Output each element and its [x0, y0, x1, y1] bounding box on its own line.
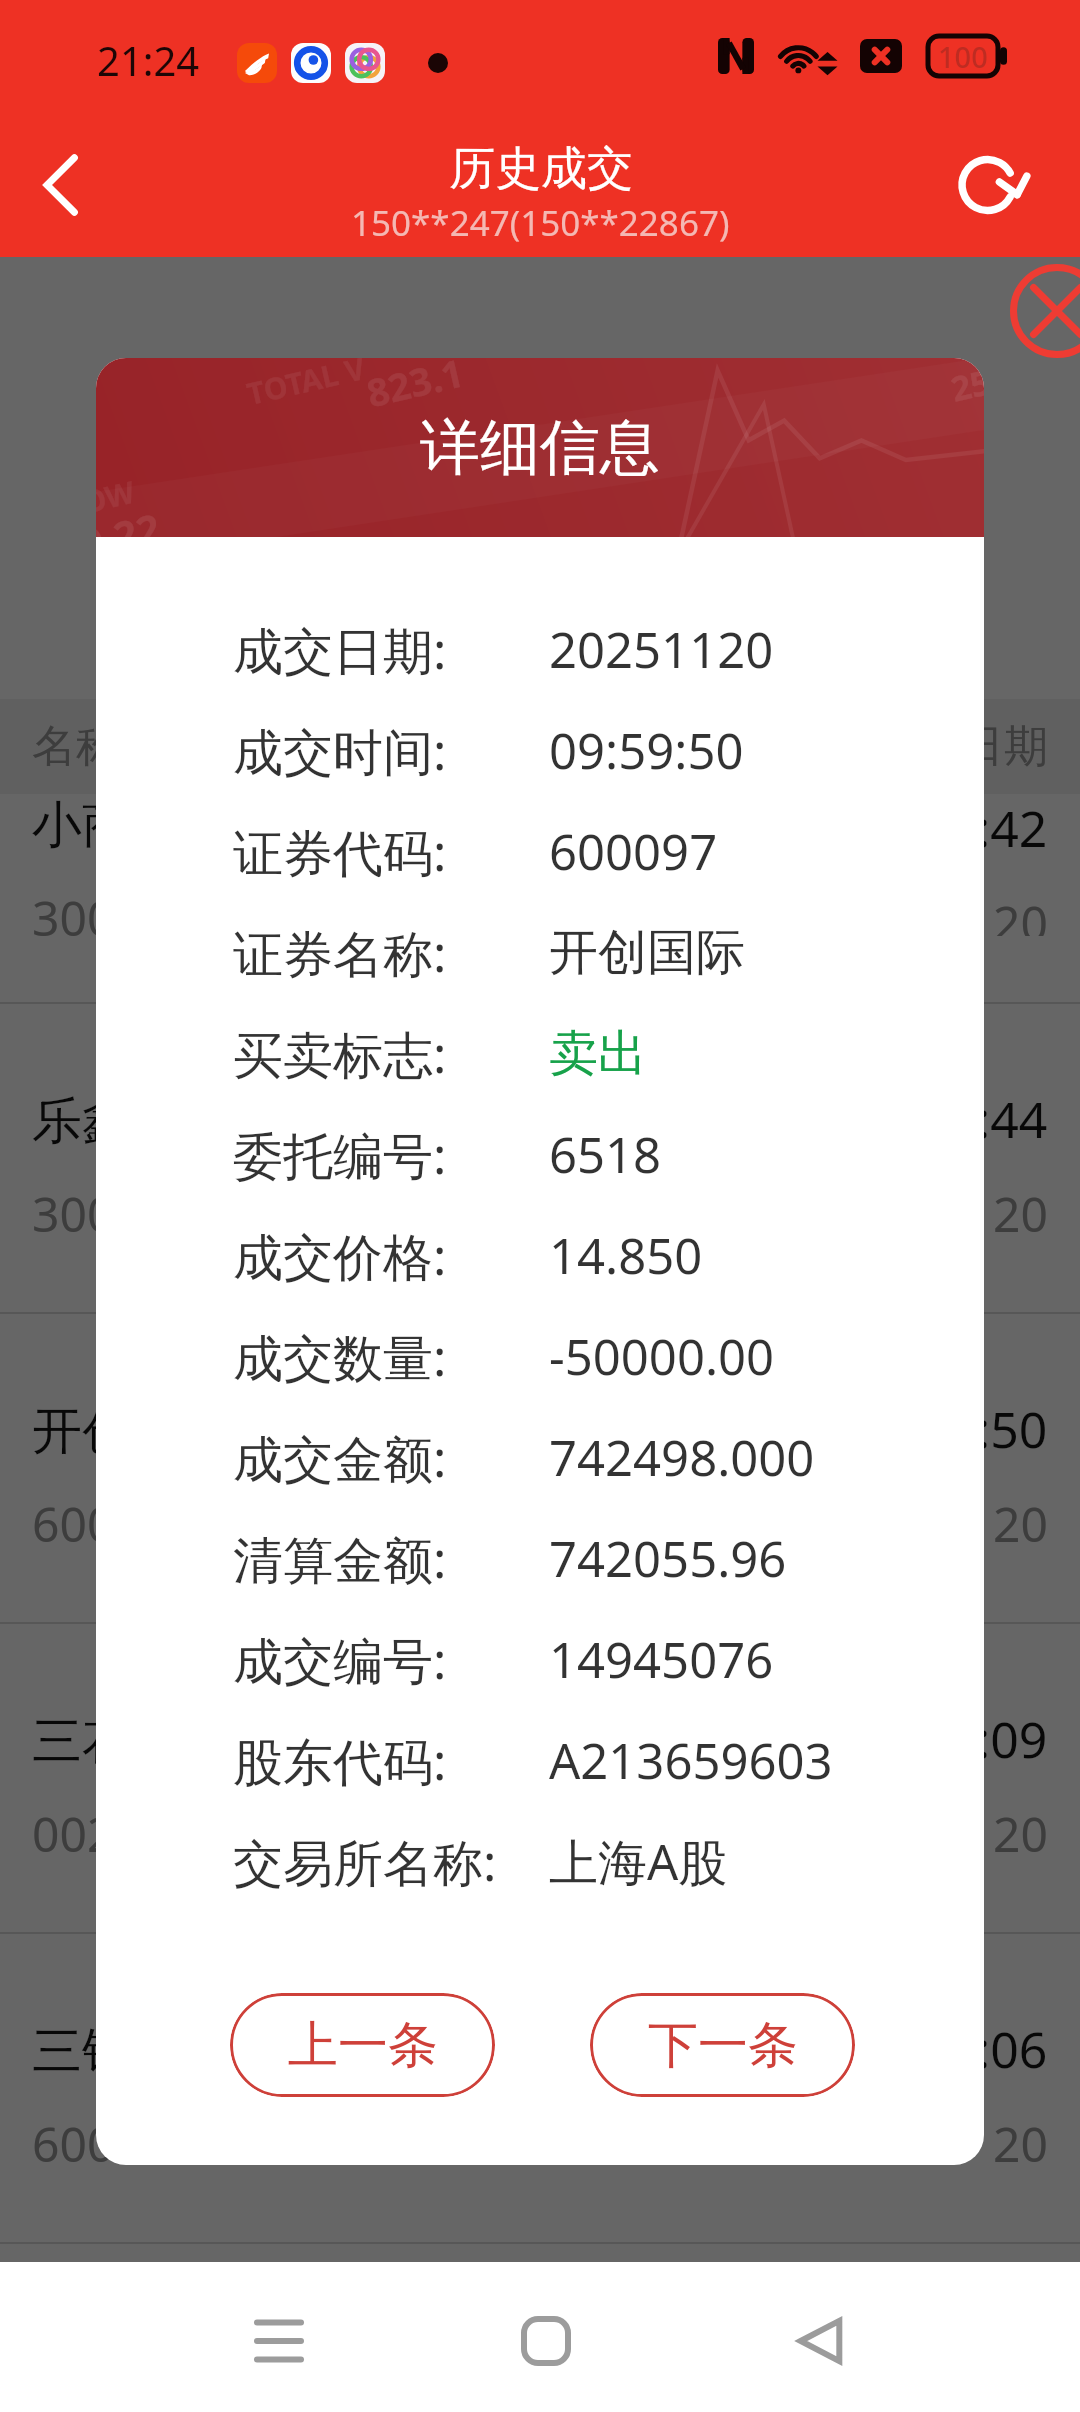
- staticText: 成交时间:: [233, 717, 447, 785]
- staticText: TOTAL V: [243, 358, 369, 414]
- staticText: 742055.96: [549, 1525, 787, 1592]
- staticText: 下一条: [648, 2014, 798, 2077]
- staticText: 成交编号:: [233, 1626, 447, 1694]
- staticText: 20: [993, 890, 1048, 936]
- staticText: 25: [946, 358, 984, 412]
- staticText: A213659603: [549, 1727, 833, 1794]
- staticText: 清算金额:: [233, 1525, 447, 1593]
- staticText: 6518: [549, 1121, 662, 1188]
- staticText: 14945076: [549, 1626, 774, 1693]
- staticText: 21:24: [97, 33, 200, 87]
- staticText: 600xxx: [32, 2111, 191, 2176]
- staticText: 600097: [549, 818, 718, 885]
- staticText: 成交日期:: [233, 616, 447, 684]
- staticText: 买卖标志:: [233, 1020, 447, 1088]
- staticText: 委托编号:: [233, 1121, 447, 1189]
- staticText: 小商品城: [32, 794, 232, 857]
- staticText: 100: [938, 37, 988, 76]
- staticText: 09:59:50: [849, 1395, 1048, 1463]
- staticText: 14:59:42: [849, 794, 1048, 862]
- staticText: 卖出: [549, 1023, 647, 1085]
- staticText: 300xxx: [32, 885, 191, 936]
- staticText: 742498.000: [549, 1424, 815, 1491]
- staticText: 日期: [960, 719, 1048, 774]
- button[interactable]: 上一条: [230, 1993, 495, 2097]
- button[interactable]: Home: [486, 2281, 606, 2401]
- staticText: 13:10:44: [849, 1085, 1048, 1153]
- staticText: 股东代码:: [233, 1727, 447, 1795]
- staticText: 三钢闽光: [32, 2020, 232, 2083]
- staticText: 0.22: [96, 500, 165, 570]
- staticText: 证券名称:: [233, 919, 447, 987]
- button[interactable]: Back: [5, 130, 115, 240]
- staticText: 150**247(150**22867): [351, 199, 730, 247]
- button[interactable]: Close: [1009, 263, 1080, 359]
- staticText: -50000.00: [549, 1323, 775, 1390]
- staticText: OW: [96, 471, 139, 522]
- staticText: 成交数量:: [233, 1323, 447, 1391]
- staticText: 09:30:09: [849, 1705, 1048, 1773]
- staticText: 开创国际: [32, 1400, 232, 1463]
- button[interactable]: Back: [760, 2281, 880, 2401]
- staticText: 20: [993, 1181, 1048, 1246]
- staticText: 历史成交: [449, 140, 633, 198]
- staticText: 详细信息: [420, 410, 660, 486]
- staticText: 20: [993, 1491, 1048, 1556]
- staticText: 20: [993, 2111, 1048, 2176]
- staticText: 名称: [32, 719, 120, 774]
- staticText: 乐鑫科技: [32, 1090, 232, 1153]
- staticText: 成交价格:: [233, 1222, 447, 1290]
- staticText: 开创国际: [549, 922, 745, 984]
- staticText: 09:30:06: [849, 2015, 1048, 2083]
- staticText: 上海A股: [549, 1828, 728, 1895]
- staticText: 14.850: [549, 1222, 703, 1289]
- button[interactable]: 下一条: [590, 1993, 855, 2097]
- staticText: 823.1: [361, 358, 469, 418]
- staticText: 成交金额:: [233, 1424, 447, 1492]
- staticText: 002050: [32, 1801, 197, 1866]
- staticText: 300xxx: [32, 1181, 191, 1246]
- staticText: 证券代码:: [233, 818, 447, 886]
- button[interactable]: Refresh: [940, 130, 1050, 240]
- staticText: 上一条: [288, 2014, 438, 2077]
- staticText: 交易所名称:: [233, 1828, 497, 1896]
- button[interactable]: Recents: [219, 2281, 339, 2401]
- staticText: 三花智控: [32, 1710, 232, 1773]
- staticText: 600097: [32, 1491, 197, 1556]
- staticText: 09:59:50: [549, 717, 744, 784]
- staticText: 20251120: [549, 616, 774, 683]
- staticText: 20: [993, 1801, 1048, 1866]
